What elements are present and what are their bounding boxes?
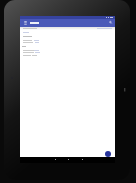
button[interactable]: Navigation menu: [23, 19, 28, 27]
button[interactable]: Search: [108, 19, 113, 27]
button[interactable]: Add: [105, 151, 111, 157]
